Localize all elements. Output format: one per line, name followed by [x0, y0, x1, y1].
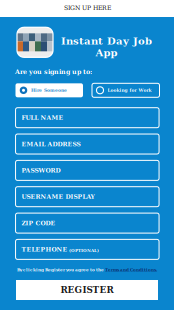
staticText: Hire Someone: [31, 88, 67, 93]
staticText: Are you signing up to:: [15, 68, 92, 75]
staticText: App: [95, 47, 117, 59]
button[interactable]: TELEPHONE: [15, 239, 159, 259]
button[interactable]: EMAIL ADDRESS: [15, 134, 159, 154]
staticText: EMAIL ADDRESS: [21, 140, 80, 147]
staticText: Looking for Work: [107, 88, 151, 93]
button[interactable]: USERNAME DISPLAY: [15, 187, 159, 207]
staticText: ZIP CODE: [21, 219, 55, 227]
staticText: By clicking Register you agree to the: [17, 267, 105, 272]
staticText: REGISTER: [60, 285, 113, 295]
staticText: TELEPHONE: [21, 246, 67, 253]
button[interactable]: REGISTER: [16, 280, 158, 300]
staticText: SIGN UP HERE: [64, 4, 111, 11]
button[interactable]: Terms and Conditions.: [105, 267, 157, 272]
staticText: USERNAME DISPLAY: [21, 193, 94, 200]
staticText: Terms and Conditions.: [105, 267, 157, 272]
button[interactable]: Hire Someone: [15, 83, 83, 97]
staticText: FULL NAME: [21, 114, 63, 121]
staticText: (OPTIONAL): [69, 248, 99, 253]
button[interactable]: FULL NAME: [15, 108, 159, 128]
button[interactable]: Looking for Work: [92, 83, 159, 97]
button[interactable]: ZIP CODE: [15, 213, 159, 233]
staticText: Instant Day Job: [61, 35, 152, 47]
button[interactable]: PASSWORD: [15, 160, 159, 180]
staticText: PASSWORD: [21, 167, 60, 174]
